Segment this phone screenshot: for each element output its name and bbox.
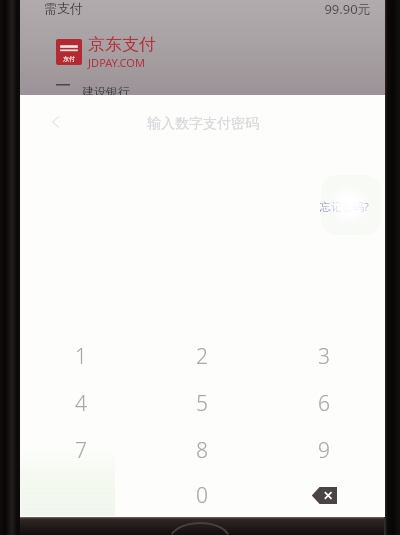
button[interactable]: 1 — [20, 333, 141, 380]
button[interactable]: 8 — [141, 427, 263, 474]
staticText: 7 — [75, 436, 87, 465]
button[interactable]: 6 — [263, 380, 385, 427]
button[interactable]: 3 — [263, 333, 385, 380]
staticText: 2 — [196, 342, 208, 371]
staticText: 99.90元 — [324, 0, 371, 18]
staticText: 4 — [75, 389, 87, 418]
button[interactable]: 7 — [20, 427, 141, 474]
button[interactable]: 忘记密码? — [314, 195, 375, 218]
staticText: 6 — [318, 389, 330, 418]
staticText: 9 — [318, 436, 330, 465]
staticText: 1 — [75, 342, 87, 371]
staticText: 东付 — [63, 55, 75, 63]
staticText: 输入数字支付密码 — [147, 115, 259, 133]
staticText: 3 — [318, 342, 330, 371]
button[interactable]: 9 — [263, 427, 385, 474]
staticText: 京东支付 — [88, 34, 156, 55]
button[interactable]: 4 — [20, 380, 141, 427]
button[interactable]: 0 — [141, 474, 263, 517]
staticText: 需支付 — [44, 0, 83, 16]
staticText: 建设银行 — [82, 84, 130, 99]
staticText: 0 — [196, 481, 208, 510]
button[interactable]: Delete — [263, 474, 385, 517]
staticText: JDPAY.COM — [88, 55, 145, 70]
button[interactable]: 5 — [141, 380, 263, 427]
staticText: 8 — [196, 436, 208, 465]
staticText: 忘记密码? — [320, 199, 369, 214]
button[interactable]: 2 — [141, 333, 263, 380]
staticText: 5 — [196, 389, 208, 418]
